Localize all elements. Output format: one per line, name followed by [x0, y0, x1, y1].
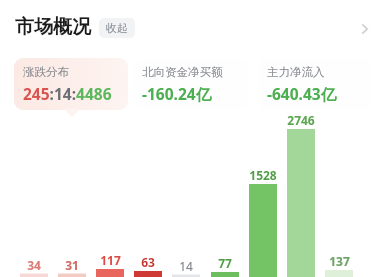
button[interactable]: 主力净流入 [258, 58, 373, 110]
button[interactable]: 涨跌分布 [14, 58, 128, 110]
staticText: 北向资金净买额 [142, 65, 223, 79]
button[interactable]: 北向资金净买额 [133, 58, 248, 110]
staticText: 涨跌分布 [23, 65, 69, 79]
staticText: 2746 [287, 112, 315, 128]
staticText: 117 [100, 252, 121, 268]
staticText: 主力净流入 [267, 65, 325, 79]
staticText: 14 [179, 258, 193, 274]
button[interactable]: 收起 [99, 18, 135, 38]
staticText: -160.24亿 [142, 83, 212, 104]
staticText: 1528 [249, 167, 277, 183]
button[interactable]: 查看更多 [352, 16, 378, 42]
staticText: 77 [218, 255, 232, 271]
staticText: 137 [329, 253, 350, 269]
button[interactable]: 市场概况 [14, 14, 92, 40]
staticText: 收起 [106, 21, 128, 35]
staticText: 34 [27, 257, 41, 273]
staticText: 31 [65, 257, 79, 273]
staticText: 245:14:4486 [23, 83, 112, 104]
staticText: 63 [141, 254, 155, 270]
staticText: 市场概况 [15, 15, 91, 39]
staticText: -640.43亿 [267, 83, 337, 104]
